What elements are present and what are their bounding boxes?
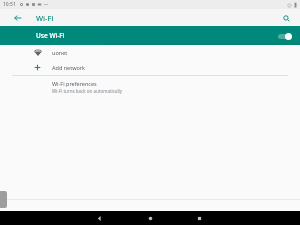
- staticText: uonet: [52, 49, 68, 56]
- staticText: Wi‑Fi preferences: [52, 80, 97, 87]
- button[interactable]: Recent apps: [192, 211, 206, 225]
- button[interactable]: Open drawer: [0, 191, 7, 208]
- staticText: Wi‑Fi turns back on automatically: [52, 88, 123, 94]
- button[interactable]: Back: [12, 12, 24, 24]
- button[interactable]: Home: [143, 211, 157, 225]
- button[interactable]: Use Wi-Fi toggle: [276, 30, 292, 42]
- button[interactable]: Use Wi‑Fi: [0, 26, 300, 45]
- button[interactable]: Add network: [0, 60, 300, 75]
- staticText: Add network: [52, 64, 86, 71]
- staticText: 10:51: [3, 1, 16, 8]
- staticText: Wi‑Fi: [36, 13, 54, 23]
- button[interactable]: Wi‑Fi preferences: [0, 76, 300, 96]
- staticText: Use Wi‑Fi: [36, 31, 65, 40]
- button[interactable]: Search: [280, 12, 292, 24]
- button[interactable]: uonet: [0, 45, 300, 60]
- button[interactable]: Back: [92, 211, 106, 225]
